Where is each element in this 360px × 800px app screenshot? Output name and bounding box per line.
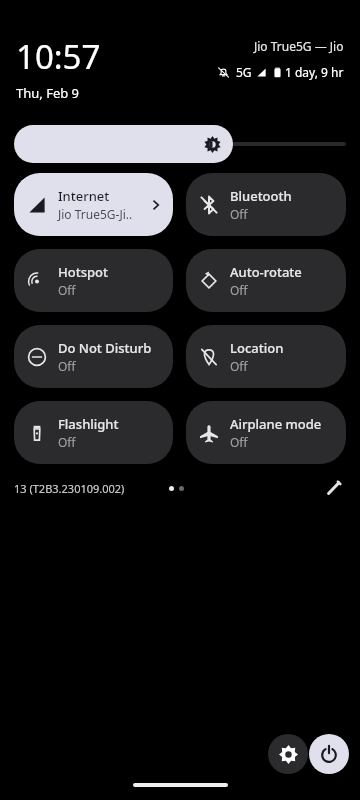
staticText: 13 (T2B3.230109.002)	[14, 481, 125, 496]
button[interactable]: Edit tiles	[322, 476, 346, 500]
button[interactable]: Auto-rotate	[186, 249, 346, 312]
staticText: Auto-rotate	[230, 263, 302, 281]
staticText: Off	[230, 434, 248, 450]
staticText: Jio True5G-Ji..	[58, 206, 133, 222]
staticText: Off	[230, 358, 248, 374]
button[interactable]: Hotspot	[14, 249, 173, 312]
button[interactable]: Location	[186, 325, 346, 388]
button[interactable]: Do Not Disturb	[14, 325, 173, 388]
button[interactable]: Internet	[14, 173, 173, 236]
button[interactable]: Settings	[268, 734, 308, 774]
button[interactable]: Brightness	[14, 125, 346, 163]
staticText: Flashlight	[58, 415, 119, 433]
staticText: 10:57	[16, 34, 101, 79]
staticText: 1 day, 9 hr	[285, 64, 344, 80]
staticText: Off	[230, 206, 248, 222]
staticText: 5G	[236, 64, 252, 80]
staticText: Off	[230, 282, 248, 298]
staticText: Location	[230, 339, 284, 357]
button[interactable]: Bluetooth	[186, 173, 346, 236]
button[interactable]: Airplane mode	[186, 401, 346, 464]
staticText: Bluetooth	[230, 187, 292, 205]
button[interactable]: Power	[309, 734, 349, 774]
staticText: Thu, Feb 9	[16, 84, 80, 102]
staticText: Off	[58, 358, 76, 374]
staticText: Do Not Disturb	[58, 339, 152, 357]
staticText: Off	[58, 282, 76, 298]
staticText: Jio True5G — Jio	[254, 38, 344, 54]
staticText: Off	[58, 434, 76, 450]
staticText: Airplane mode	[230, 415, 322, 433]
staticText: Internet	[58, 187, 110, 205]
staticText: Hotspot	[58, 263, 108, 281]
button[interactable]: Flashlight	[14, 401, 173, 464]
